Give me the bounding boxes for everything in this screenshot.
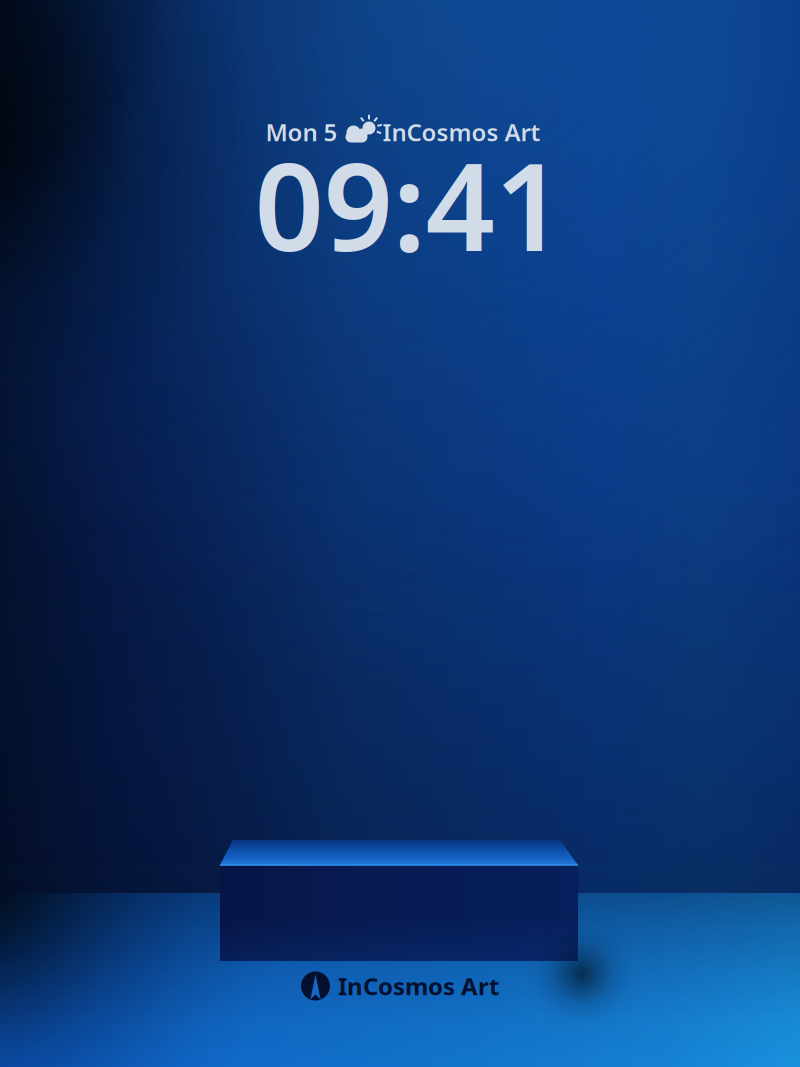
staticText: Mon 5 xyxy=(265,116,337,148)
staticText: 09:41 xyxy=(254,123,563,284)
button[interactable]: InCosmos Art xyxy=(0,968,800,1004)
staticText: InCosmos Art xyxy=(382,116,540,148)
staticText: InCosmos Art xyxy=(338,970,499,1002)
